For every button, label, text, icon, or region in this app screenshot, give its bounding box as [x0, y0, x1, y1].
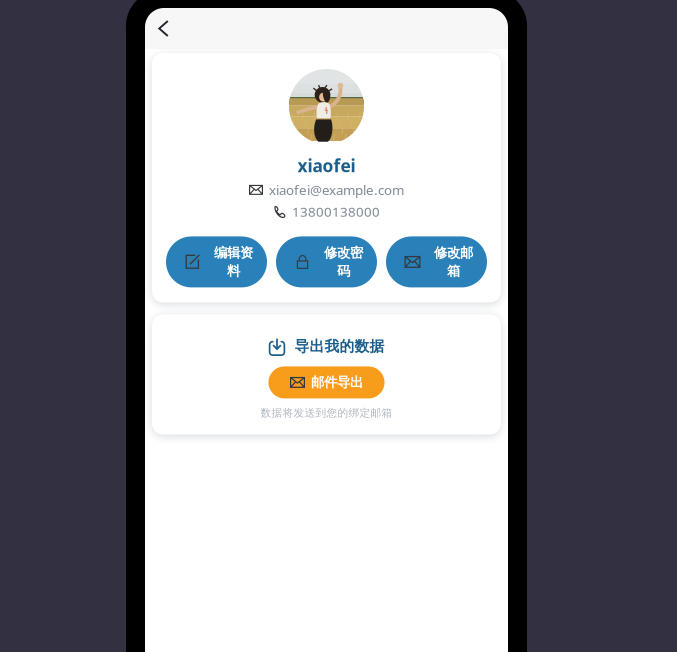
- staticText: 导出我的数据: [294, 337, 384, 355]
- staticText: 编辑资: [214, 245, 253, 261]
- staticText: 13800138000: [292, 203, 380, 220]
- staticText: 数据将发送到您的绑定邮箱: [260, 406, 392, 419]
- staticText: 修改密: [324, 245, 363, 261]
- button[interactable]: Back: [150, 8, 177, 49]
- button[interactable]: 邮件导出: [268, 366, 384, 398]
- staticText: xiaofei: [297, 154, 355, 177]
- staticText: 箱: [447, 263, 460, 279]
- button[interactable]: 编辑资: [166, 236, 267, 287]
- staticText: 修改邮: [434, 245, 473, 261]
- staticText: xiaofei@example.com: [269, 181, 404, 199]
- button[interactable]: 修改邮: [386, 236, 487, 287]
- staticText: 邮件导出: [311, 374, 363, 391]
- button[interactable]: 修改密: [276, 236, 377, 287]
- staticText: 码: [337, 263, 350, 279]
- staticText: 料: [227, 263, 240, 279]
